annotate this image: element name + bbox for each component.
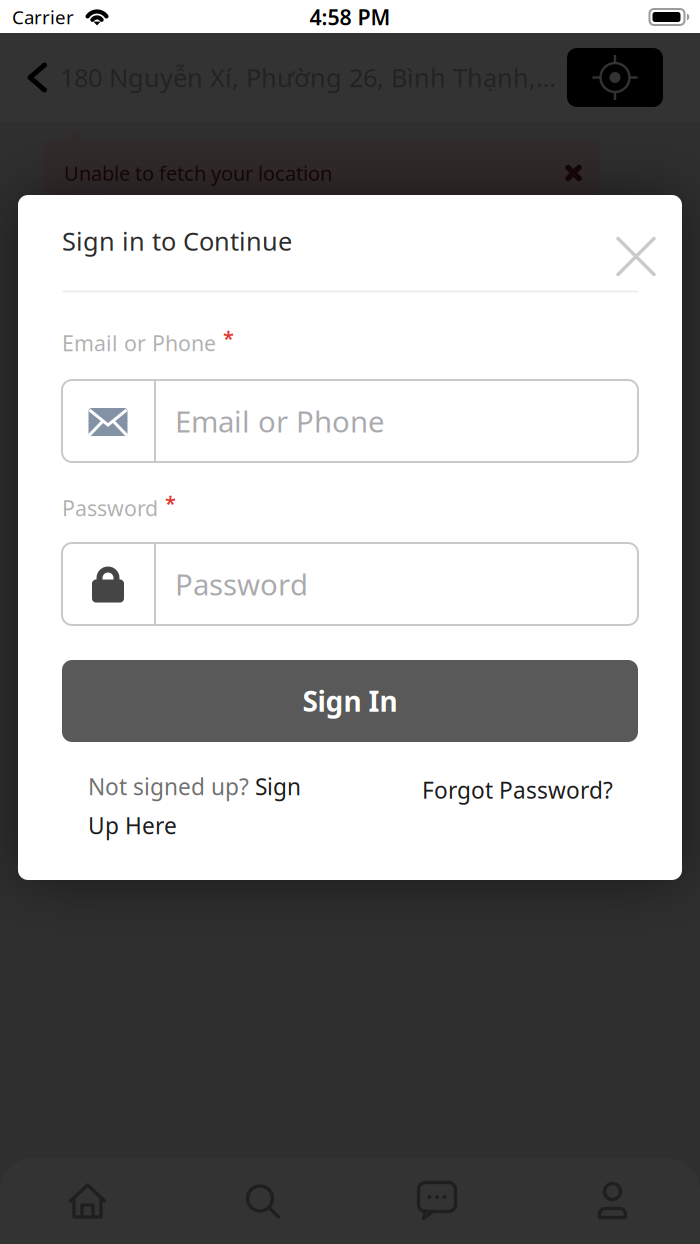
staticText: 180 Nguyễn Xí, Phường 26, Bình Thạnh, … (60, 61, 560, 94)
staticText: Sign In (302, 682, 397, 720)
staticText: Password (62, 494, 158, 522)
button[interactable]: Close (598, 218, 674, 294)
button[interactable]: Email or Phone (62, 380, 638, 462)
staticText: Sign (255, 771, 301, 801)
staticText: Email or Phone (175, 401, 385, 440)
button[interactable]: Not signed up? (88, 774, 338, 838)
staticText: Email or Phone (62, 329, 216, 357)
button[interactable]: Home (0, 1158, 175, 1244)
staticText: Forgot Password? (422, 775, 613, 805)
button[interactable]: Dismiss (553, 153, 593, 193)
staticText: 4:58 PM (309, 3, 390, 31)
button[interactable]: Sign In (62, 660, 638, 742)
button[interactable]: Messages (350, 1158, 525, 1244)
button[interactable]: Locate me (567, 48, 663, 107)
staticText: * (165, 490, 176, 516)
staticText: * (223, 325, 234, 351)
staticText: Unable to fetch your location (64, 160, 332, 186)
staticText: Password (175, 564, 308, 603)
staticText: Sign in to Continue (62, 224, 292, 258)
button[interactable]: Back (15, 49, 59, 105)
staticText: Carrier (12, 5, 74, 29)
staticText: Not signed up? (88, 771, 249, 801)
button[interactable]: Forgot Password? (422, 772, 652, 808)
button[interactable]: Profile (525, 1158, 700, 1244)
button[interactable]: Password (62, 543, 638, 625)
staticText: Up Here (88, 810, 177, 841)
